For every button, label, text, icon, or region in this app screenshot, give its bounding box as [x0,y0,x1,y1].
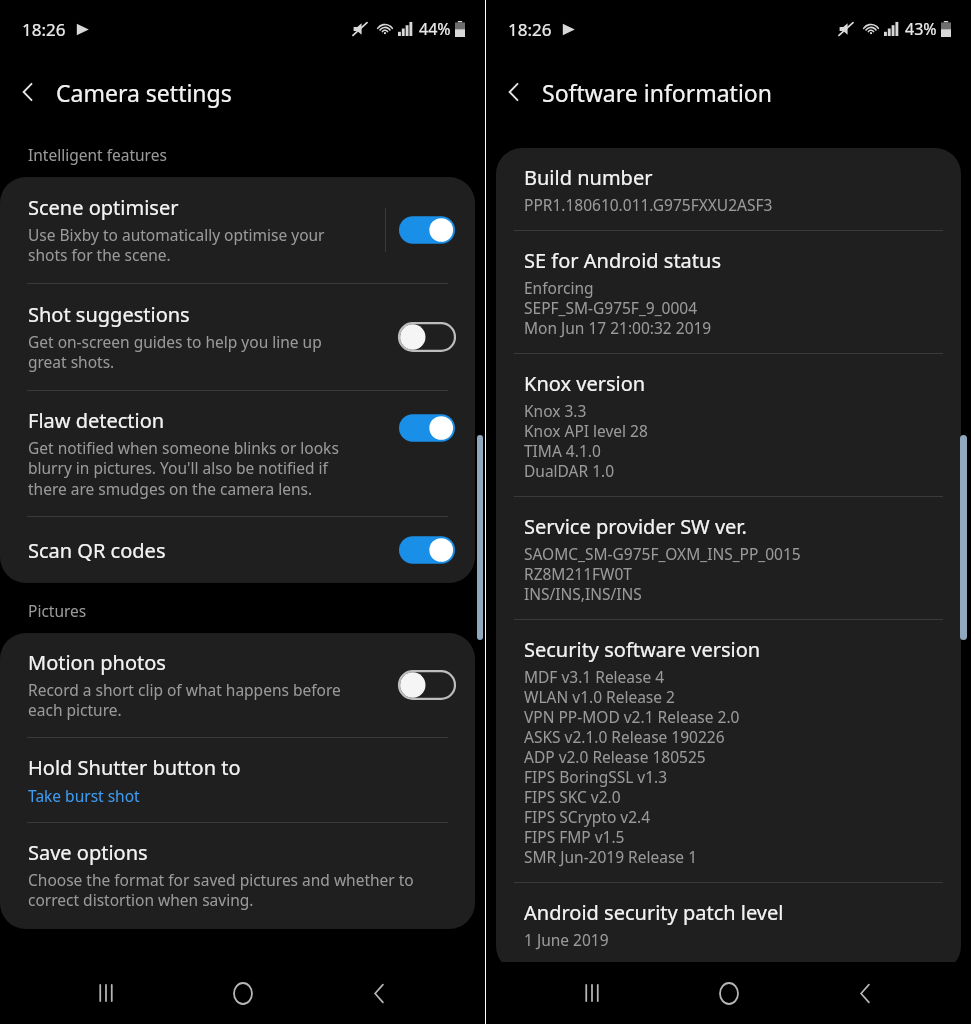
staticText: Enforcing SEPF_SM-G975F_9_0004 Mon Jun 1… [524,277,712,338]
button[interactable]: Knox version [496,354,961,496]
staticText: SE for Android status [524,247,721,274]
button[interactable]: Service provider SW ver. [496,497,961,619]
button[interactable]: Back [0,64,56,120]
button[interactable]: Save options [0,823,475,929]
staticText: Knox version [524,370,646,397]
staticText: Record a short clip of what happens befo… [28,679,341,721]
button[interactable]: Motion photos [0,633,475,737]
staticText: Pictures [28,600,87,621]
button[interactable]: Back [486,64,542,120]
staticText: Android security patch level [524,899,784,926]
button[interactable]: Home [698,962,760,1024]
button[interactable]: Recent apps [75,962,137,1024]
button[interactable]: Shot suggestions [0,284,475,390]
button[interactable]: Hold Shutter button to [0,738,475,822]
staticText: Hold Shutter button to [28,754,241,781]
staticText: Scan QR codes [28,537,399,564]
button[interactable]: Recent apps [561,962,623,1024]
staticText: Motion photos [28,649,166,676]
staticText: Security software version [524,636,761,663]
staticText: Intelligent features [28,144,167,165]
staticText: 1 June 2019 [524,929,609,950]
button[interactable]: Flaw detection [0,391,475,516]
staticText: Knox 3.3 Knox API level 28 TIMA 4.1.0 Du… [524,400,648,481]
staticText: Get on-screen guides to help you line up… [28,331,322,373]
staticText: 18:26 [22,18,66,41]
staticText: Flaw detection [28,407,165,434]
staticText: Camera settings [56,77,232,108]
button[interactable]: Toggle off [399,670,455,700]
staticText: Use Bixby to automatically optimise your… [28,224,325,266]
staticText: Choose the format for saved pictures and… [28,869,414,911]
button[interactable]: Toggle on [399,413,455,443]
staticText: Software information [542,77,772,108]
staticText: Take burst shot [28,785,140,806]
staticText: 18:26 [508,18,552,41]
button[interactable]: Back [834,962,896,1024]
button[interactable]: Back [348,962,410,1024]
staticText: Service provider SW ver. [524,513,747,540]
button[interactable]: SE for Android status [496,231,961,353]
staticText: Get notified when someone blinks or look… [28,437,339,500]
staticText: 44% [419,18,451,40]
button[interactable]: Toggle off [399,322,455,352]
staticText: Build number [524,164,653,191]
staticText: SAOMC_SM-G975F_OXM_INS_PP_0015 RZ8M211FW… [524,543,801,604]
staticText: Shot suggestions [28,301,190,328]
button[interactable]: Scene optimiser [0,177,475,283]
button[interactable]: Build number [496,148,961,230]
staticText: PPR1.180610.011.G975FXXU2ASF3 [524,194,773,215]
button[interactable]: Home [212,962,274,1024]
staticText: MDF v3.1 Release 4 WLAN v1.0 Release 2 V… [524,666,740,867]
button[interactable]: Toggle on [399,535,455,565]
button[interactable]: Toggle on [399,215,455,245]
button[interactable]: Security software version [496,620,961,882]
button[interactable]: Scan QR codes [0,517,475,583]
staticText: Scene optimiser [28,194,179,221]
button[interactable]: Android security patch level [496,883,961,972]
staticText: 43% [905,18,937,40]
staticText: Save options [28,839,148,866]
